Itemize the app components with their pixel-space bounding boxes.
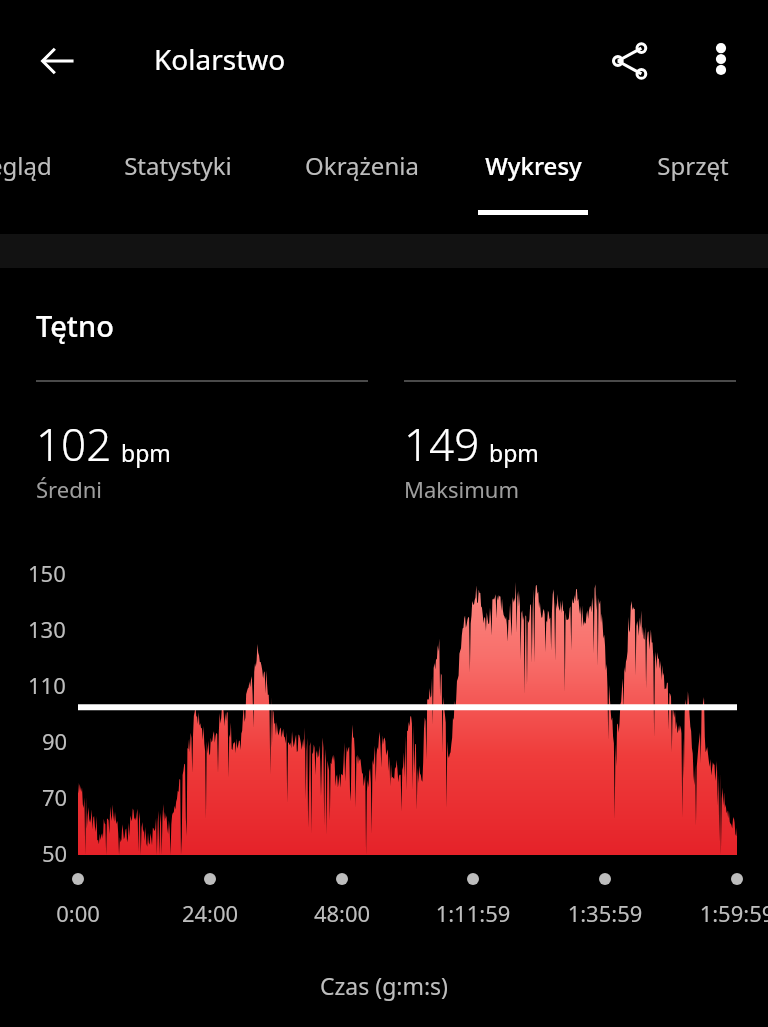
button[interactable]: Okrążenia xyxy=(277,122,447,234)
staticText: 50 xyxy=(42,838,68,868)
staticText: Kolarstwo xyxy=(154,40,286,78)
button[interactable]: Wykresy xyxy=(461,122,605,234)
staticText: 102 xyxy=(36,414,112,474)
staticText: 70 xyxy=(42,782,68,812)
staticText: 110 xyxy=(28,670,66,700)
staticText: Sprzęt xyxy=(657,149,729,182)
staticText: Przegląd xyxy=(0,149,52,182)
staticText: 149 xyxy=(404,414,480,474)
staticText: 0:00 xyxy=(44,898,112,928)
staticText: 90 xyxy=(42,726,68,756)
button[interactable]: Przegląd xyxy=(0,122,86,234)
staticText: Czas (g:m:s) xyxy=(0,970,768,1001)
staticText: 1:35:59 xyxy=(557,898,653,928)
button[interactable]: Share xyxy=(597,28,663,94)
staticText: Tętno xyxy=(36,306,114,345)
staticText: 1:11:59 xyxy=(425,898,521,928)
staticText: Wykresy xyxy=(485,149,582,182)
button[interactable]: Statystyki xyxy=(93,122,263,234)
staticText: 48:00 xyxy=(308,898,376,928)
staticText: 1:59:59 xyxy=(689,898,768,928)
staticText: Średni xyxy=(36,474,102,504)
staticText: Statystyki xyxy=(124,149,232,182)
button[interactable]: Sprzęt xyxy=(631,122,755,234)
button[interactable]: More options xyxy=(690,28,752,90)
staticText: Okrążenia xyxy=(305,149,419,182)
staticText: bpm xyxy=(489,437,539,468)
staticText: 24:00 xyxy=(176,898,244,928)
staticText: 130 xyxy=(28,614,66,644)
staticText: 150 xyxy=(28,558,66,588)
button[interactable]: Back xyxy=(24,28,90,94)
staticText: bpm xyxy=(121,437,171,468)
staticText: Maksimum xyxy=(404,474,519,504)
